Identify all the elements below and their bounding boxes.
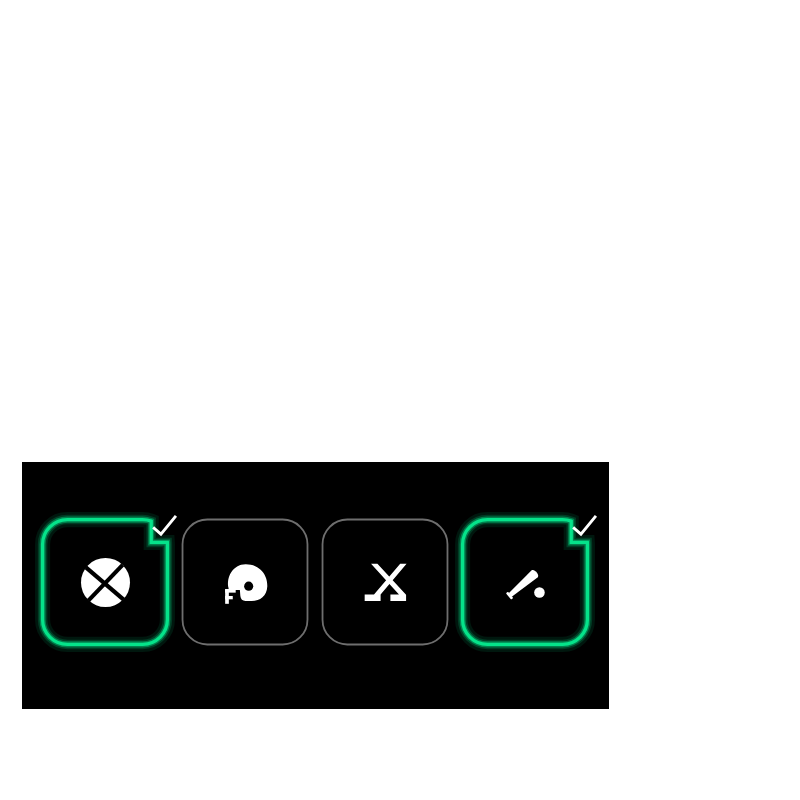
button[interactable]: Baseball, selected xyxy=(458,515,592,649)
button[interactable]: Basketball, selected xyxy=(38,515,172,649)
button[interactable]: Hockey xyxy=(318,515,452,649)
button[interactable]: Football xyxy=(178,515,312,649)
